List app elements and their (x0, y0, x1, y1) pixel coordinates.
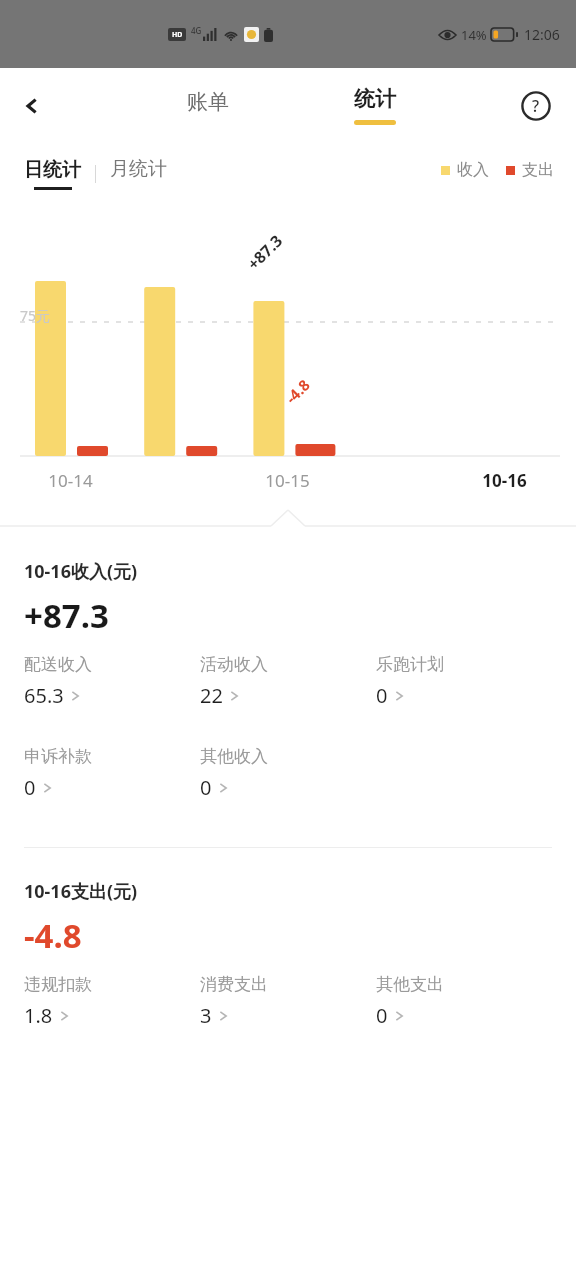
button[interactable]: 其他收入 (200, 746, 350, 801)
staticText: 日统计 (24, 158, 81, 182)
button[interactable]: 配送收入 (24, 654, 174, 709)
staticText: 12:06 (524, 25, 560, 44)
staticText: 3 (200, 1002, 212, 1029)
staticText: 75元 (20, 306, 51, 325)
button[interactable]: 月统计 (110, 157, 167, 181)
button[interactable]: 申诉补款 (24, 746, 174, 801)
staticText: 0 (24, 774, 36, 801)
staticText: 申诉补款 (24, 746, 92, 767)
staticText: 收入 (457, 160, 489, 180)
button[interactable]: 账单 (166, 68, 250, 143)
button[interactable]: 其他支出 (376, 974, 526, 1029)
staticText: 0 (376, 682, 388, 709)
button[interactable]: 消费支出 (200, 974, 350, 1029)
staticText: 其他支出 (376, 974, 444, 995)
staticText: 0 (200, 774, 212, 801)
button[interactable]: Help (514, 84, 558, 128)
button[interactable]: 10-15 (233, 469, 341, 492)
staticText: 10-16收入(元) (24, 559, 138, 584)
button[interactable]: 10-16 (450, 469, 558, 492)
staticText: 4G (191, 25, 202, 36)
button[interactable]: 统计 (325, 68, 425, 143)
staticText: +87.3 (242, 229, 288, 275)
staticText: 账单 (187, 89, 229, 115)
staticText: 10-15 (265, 469, 310, 492)
staticText: 10-14 (48, 469, 93, 492)
staticText: 10-16 (482, 469, 527, 492)
staticText: 14% (461, 26, 487, 44)
staticText: 乐跑计划 (376, 654, 444, 675)
staticText: -4.8 (24, 913, 82, 958)
staticText: 其他收入 (200, 746, 268, 767)
staticText: 1.8 (24, 1002, 53, 1029)
button[interactable]: Back (8, 82, 56, 130)
button[interactable]: 活动收入 (200, 654, 350, 709)
staticText: 支出 (522, 160, 554, 180)
staticText: 统计 (354, 86, 396, 112)
staticText: 配送收入 (24, 654, 92, 675)
staticText: HD (172, 30, 183, 40)
button[interactable]: 10-14 (16, 469, 124, 492)
staticText: 活动收入 (200, 654, 268, 675)
staticText: 违规扣款 (24, 974, 92, 995)
staticText: +87.3 (24, 593, 109, 638)
staticText: -4.8 (281, 374, 314, 408)
button[interactable]: 日统计 (24, 158, 81, 190)
button[interactable]: 违规扣款 (24, 974, 174, 1029)
staticText: 0 (376, 1002, 388, 1029)
button[interactable]: 乐跑计划 (376, 654, 526, 709)
staticText: 65.3 (24, 682, 64, 709)
staticText: 10-16支出(元) (24, 879, 138, 904)
staticText: 消费支出 (200, 974, 268, 995)
staticText: 22 (200, 682, 223, 709)
staticText: ? (532, 95, 540, 117)
